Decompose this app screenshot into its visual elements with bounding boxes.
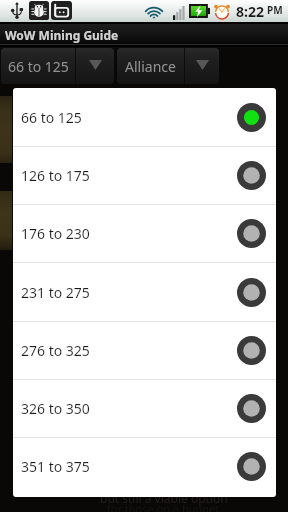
button[interactable]: Alliance — [117, 48, 219, 84]
button[interactable]: 66 to 125 — [13, 88, 276, 146]
staticText: but still a viable option — [100, 490, 228, 506]
button[interactable]: 276 to 325 — [13, 321, 276, 379]
staticText: for those on a budget — [107, 501, 220, 512]
staticText: 126 to 175 — [21, 166, 90, 185]
button[interactable]: 176 to 230 — [13, 204, 276, 262]
staticText: 176 to 230 — [21, 224, 90, 243]
button[interactable]: 231 to 275 — [13, 263, 276, 321]
staticText: 326 to 350 — [21, 399, 90, 418]
button[interactable]: 351 to 375 — [13, 437, 276, 495]
staticText: 231 to 275 — [21, 283, 90, 302]
staticText: 8:22 — [236, 2, 264, 21]
staticText: WoW Mining Guide — [5, 27, 119, 43]
staticText: 351 to 375 — [21, 457, 90, 476]
staticText: 66 to 125 — [8, 57, 69, 84]
staticText: 276 to 325 — [21, 341, 90, 360]
staticText: PM — [267, 3, 283, 17]
button[interactable]: 326 to 350 — [13, 379, 276, 437]
staticText: 66 to 125 — [21, 108, 82, 127]
staticText: Alliance — [125, 57, 176, 84]
button[interactable]: 66 to 125 — [1, 48, 114, 84]
button[interactable]: 126 to 175 — [13, 146, 276, 204]
